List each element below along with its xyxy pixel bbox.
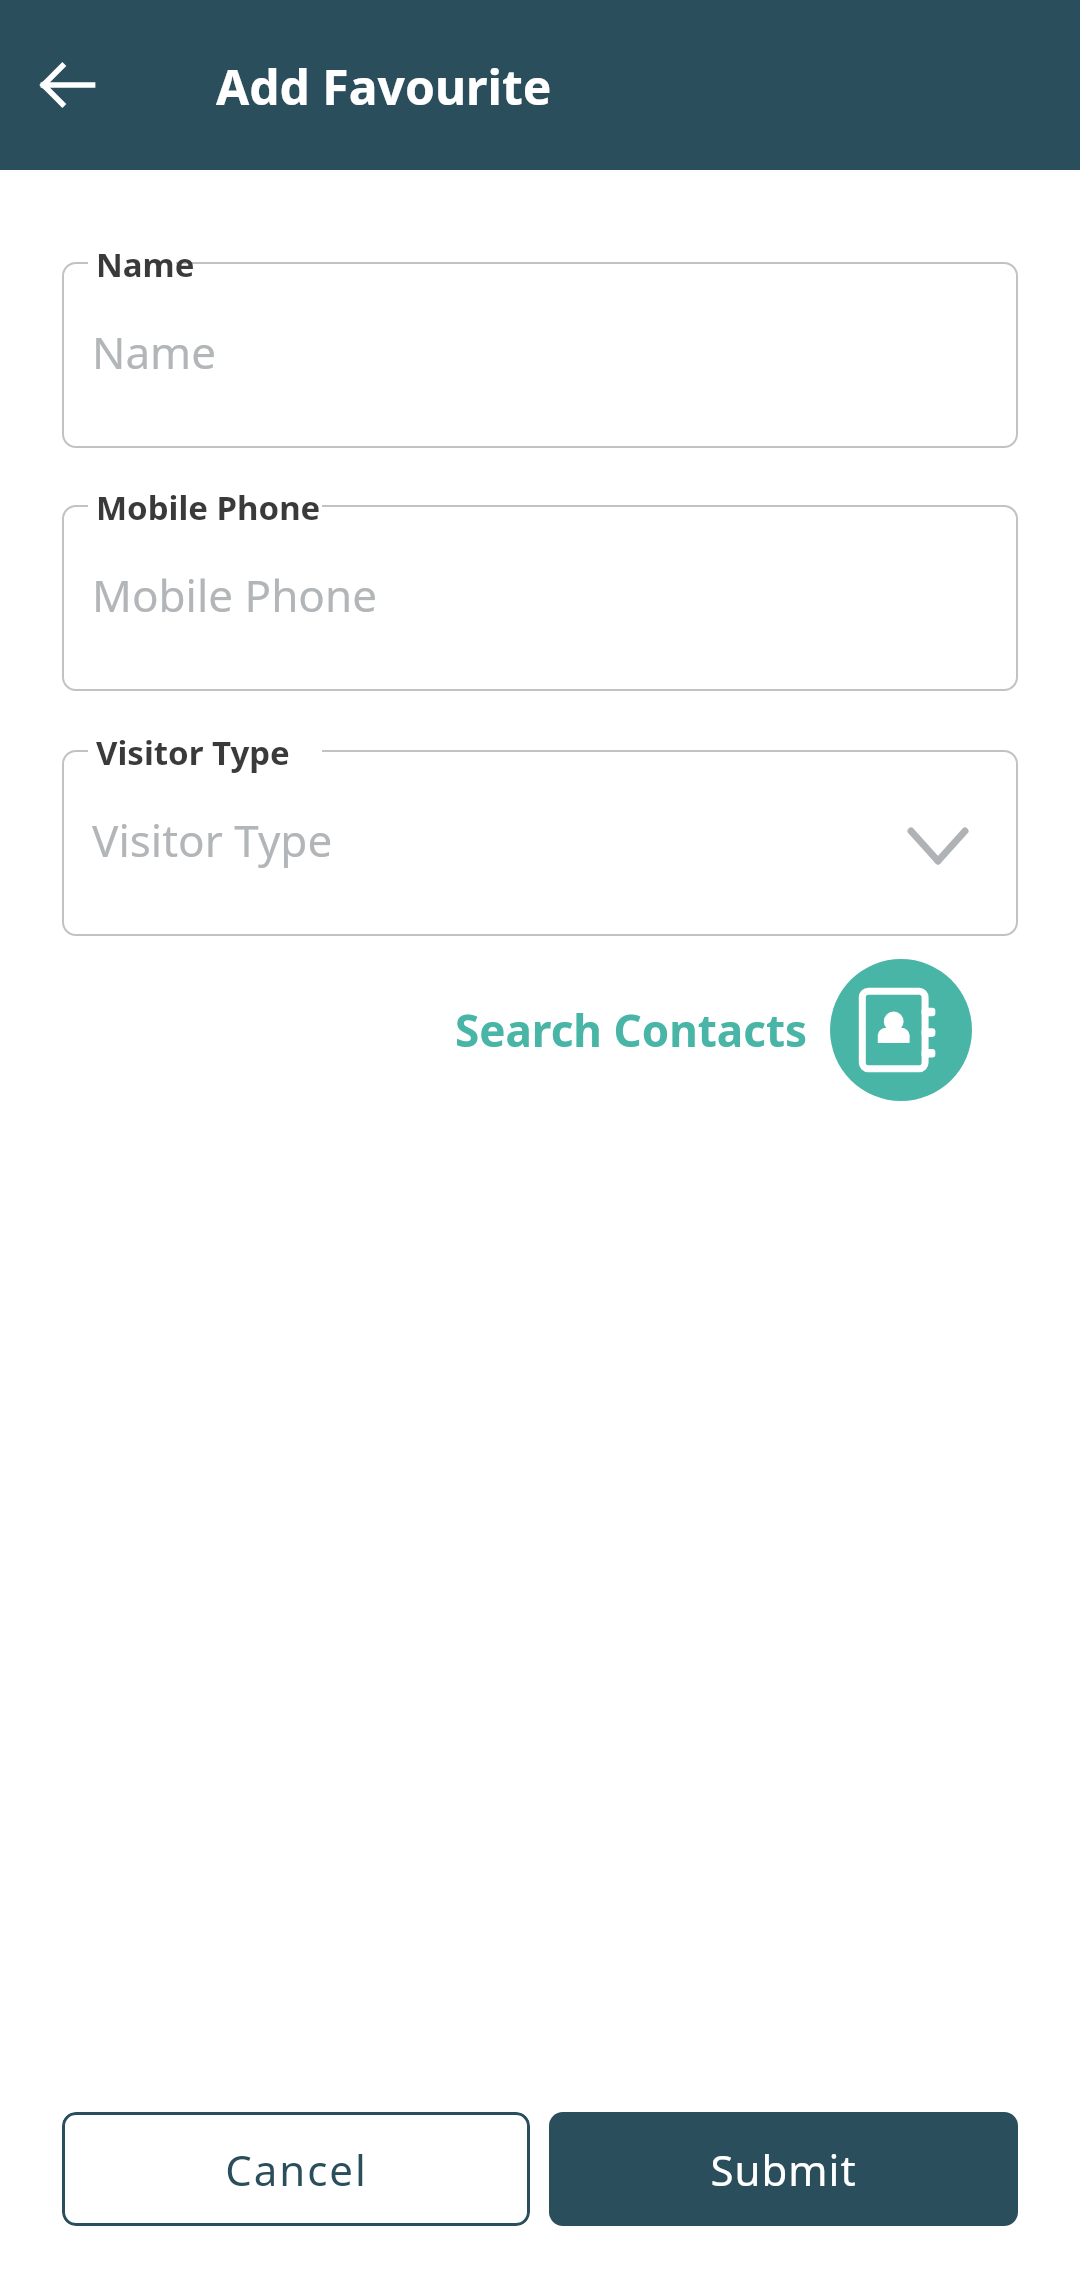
staticText: Submit xyxy=(710,2141,857,2198)
button[interactable]: Name xyxy=(62,262,1018,448)
staticText: Mobile Phone xyxy=(92,565,377,625)
button[interactable]: Back xyxy=(24,41,112,129)
button[interactable]: Search Contacts xyxy=(455,959,972,1101)
button[interactable]: Submit xyxy=(549,2112,1018,2226)
staticText: Search Contacts xyxy=(455,1000,808,1060)
staticText: Name xyxy=(92,322,217,382)
button[interactable]: Search Contacts xyxy=(830,959,972,1101)
staticText: Visitor Type xyxy=(92,810,333,870)
button[interactable]: Cancel xyxy=(62,2112,530,2226)
staticText: Name xyxy=(96,242,195,287)
button[interactable]: Visitor Type xyxy=(62,750,1018,936)
staticText: Visitor Type xyxy=(96,730,290,775)
staticText: Add Favourite xyxy=(216,54,552,119)
button[interactable]: Mobile Phone xyxy=(62,505,1018,691)
staticText: Mobile Phone xyxy=(96,485,321,530)
staticText: Cancel xyxy=(225,2141,368,2198)
